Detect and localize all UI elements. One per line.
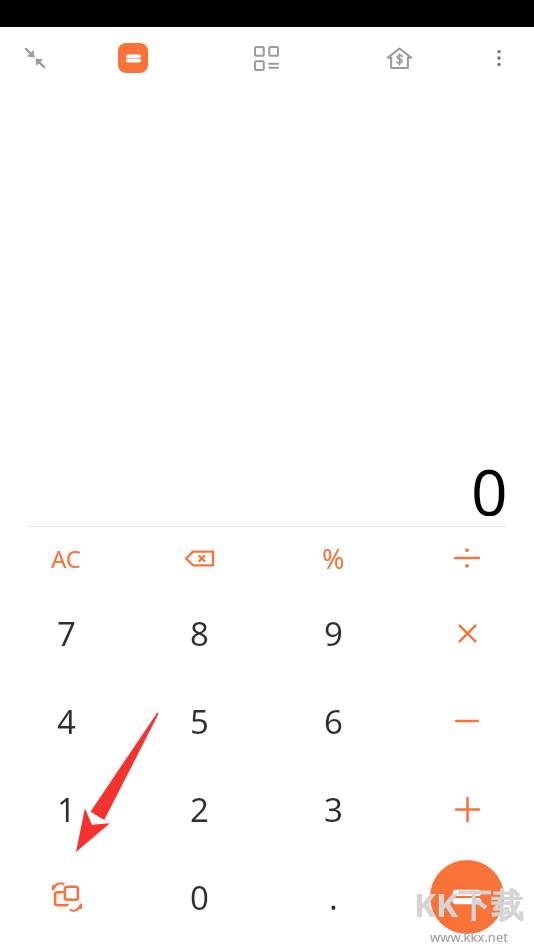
staticText: 6: [324, 699, 343, 744]
button[interactable]: AC: [0, 527, 133, 589]
staticText: www.kkx.net: [430, 928, 508, 946]
button[interactable]: 3: [266, 765, 400, 853]
staticText: 2: [190, 787, 209, 832]
button[interactable]: Multiply: [400, 589, 534, 677]
button[interactable]: Equals: [430, 860, 504, 934]
button[interactable]: Minus: [400, 677, 534, 765]
button[interactable]: More options: [475, 34, 523, 82]
button[interactable]: 9: [266, 589, 400, 677]
button[interactable]: Loan calculator: [375, 34, 423, 82]
button[interactable]: Calculator: [109, 34, 157, 82]
staticText: 8: [190, 611, 209, 656]
button[interactable]: Plus: [400, 765, 534, 853]
staticText: 5: [190, 699, 209, 744]
staticText: AC: [51, 542, 82, 575]
button[interactable]: .: [266, 853, 400, 941]
staticText: %: [322, 540, 345, 577]
staticText: 4: [57, 699, 76, 744]
staticText: 9: [324, 611, 343, 656]
staticText: 0: [190, 875, 209, 920]
staticText: 1: [57, 787, 76, 832]
button[interactable]: Collapse: [11, 34, 59, 82]
button[interactable]: 6: [266, 677, 400, 765]
staticText: 7: [57, 611, 76, 656]
button[interactable]: Backspace: [133, 527, 266, 589]
button[interactable]: 8: [133, 589, 266, 677]
button[interactable]: 2: [133, 765, 266, 853]
button[interactable]: Unit converter: [0, 853, 133, 941]
staticText: 0: [471, 448, 508, 516]
button[interactable]: 5: [133, 677, 266, 765]
button[interactable]: %: [266, 527, 400, 589]
button[interactable]: 7: [0, 589, 133, 677]
staticText: 3: [324, 787, 343, 832]
button[interactable]: All tools: [242, 34, 290, 82]
staticText: KK下载: [414, 882, 524, 927]
staticText: .: [329, 875, 338, 920]
button[interactable]: Divide: [400, 527, 534, 589]
button[interactable]: 4: [0, 677, 133, 765]
button[interactable]: 0: [133, 853, 266, 941]
button[interactable]: 1: [0, 765, 133, 853]
